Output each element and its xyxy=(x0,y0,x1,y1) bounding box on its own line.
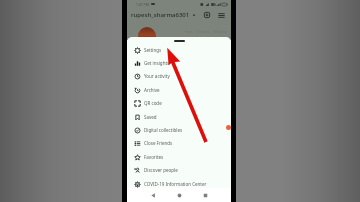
button[interactable]: Settings xyxy=(127,44,231,57)
staticText: rupesh_sharma6301 xyxy=(131,11,190,19)
staticText: Close Friends xyxy=(144,140,173,146)
button[interactable]: Favorites xyxy=(127,151,231,164)
button[interactable]: Get insights xyxy=(127,57,231,70)
button[interactable]: Digital collectibles xyxy=(127,124,231,137)
staticText: 1:41 PM xyxy=(136,2,149,7)
button[interactable]: Archive xyxy=(127,84,231,97)
button[interactable]: Discover people xyxy=(127,164,231,177)
button[interactable]: COVID-19 Information Center xyxy=(127,178,231,191)
staticText: COVID-19 Information Center xyxy=(144,181,207,187)
button[interactable]: Close Friends xyxy=(127,137,231,150)
staticText: Favorites xyxy=(144,154,164,160)
button[interactable]: QR code xyxy=(127,97,231,110)
staticText: Saved xyxy=(144,114,157,120)
staticText: QR code xyxy=(144,100,162,106)
button[interactable]: Your activity xyxy=(127,70,231,83)
button[interactable]: Back xyxy=(146,188,160,202)
staticText: Discover people xyxy=(144,167,178,173)
button[interactable]: Menu xyxy=(216,10,226,20)
staticText: Settings xyxy=(144,47,162,53)
button[interactable]: Home xyxy=(172,188,186,202)
button[interactable]: Recents xyxy=(198,188,212,202)
button[interactable]: New post xyxy=(202,10,212,20)
staticText: Archive xyxy=(144,87,160,93)
staticText: Digital collectibles xyxy=(144,127,183,133)
button[interactable]: Saved xyxy=(127,111,231,124)
staticText: Get insights xyxy=(144,60,170,66)
staticText: Your activity xyxy=(144,73,170,79)
